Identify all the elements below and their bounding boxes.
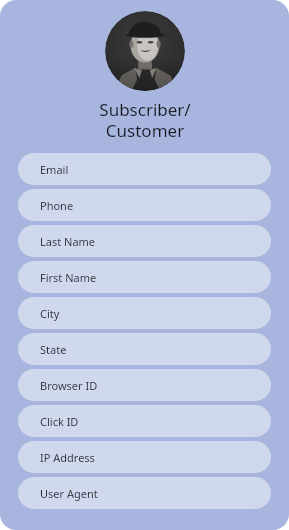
staticText: Last Name xyxy=(40,234,96,249)
button[interactable]: Email xyxy=(18,153,271,185)
staticText: Email xyxy=(40,162,69,177)
staticText: Browser ID xyxy=(40,378,98,393)
staticText: First Name xyxy=(40,270,97,285)
staticText: State xyxy=(40,342,67,357)
button[interactable]: First Name xyxy=(18,261,271,293)
button[interactable]: State xyxy=(18,333,271,365)
staticText: User Agent xyxy=(40,486,98,501)
staticText: Phone xyxy=(40,198,74,213)
staticText: IP Address xyxy=(40,450,95,465)
button[interactable]: Click ID xyxy=(18,405,271,437)
button[interactable]: Last Name xyxy=(18,225,271,257)
button[interactable]: IP Address xyxy=(18,441,271,473)
button[interactable]: Profile photo xyxy=(105,11,185,91)
staticText: Subscriber/ Customer xyxy=(99,98,191,142)
staticText: City xyxy=(40,306,60,321)
button[interactable]: Phone xyxy=(18,189,271,221)
staticText: Click ID xyxy=(40,414,79,429)
button[interactable]: User Agent xyxy=(18,477,271,509)
button[interactable]: City xyxy=(18,297,271,329)
button[interactable]: Browser ID xyxy=(18,369,271,401)
